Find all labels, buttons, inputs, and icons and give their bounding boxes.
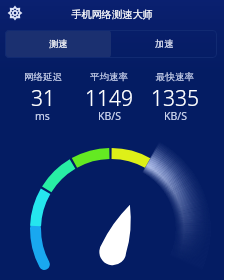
staticText: 平均速率 (90, 71, 128, 83)
button[interactable]: Settings (4, 2, 25, 23)
staticText: 网络延迟 (24, 71, 62, 83)
staticText: 测速 (49, 38, 68, 50)
staticText: 手机网络测速大师 (0, 8, 224, 21)
staticText: 1149 (85, 84, 133, 113)
staticText: KB/S (98, 109, 121, 123)
staticText: 1335 (151, 84, 199, 113)
staticText: 31 (31, 84, 55, 113)
staticText: 最快速率 (156, 71, 194, 83)
button[interactable]: 加速 (111, 30, 217, 58)
button[interactable]: 测速 (5, 30, 111, 58)
staticText: 加速 (155, 38, 174, 50)
staticText: ms (35, 109, 50, 123)
staticText: KB/S (164, 109, 187, 123)
